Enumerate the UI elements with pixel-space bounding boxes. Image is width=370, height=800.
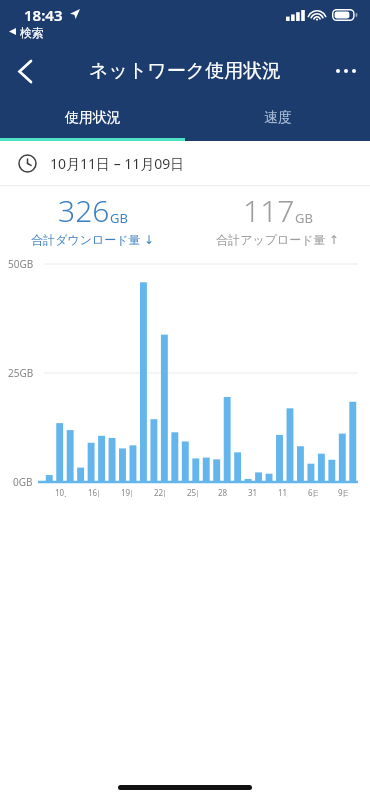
staticText: 9日 [338, 487, 348, 498]
staticText: 326 [58, 190, 110, 231]
staticText: 117 [243, 190, 295, 231]
staticText: 合計アップロード量 ↑ [216, 231, 339, 247]
staticText: 25日 [187, 487, 198, 498]
staticText: 16日 [88, 487, 99, 498]
staticText: GB [295, 209, 313, 227]
staticText: 合計ダウンロード量 ↓ [31, 231, 154, 247]
staticText: 11月3日 [278, 487, 288, 498]
button[interactable]: 速度 [185, 95, 370, 141]
staticText: 18:43 [24, 5, 63, 25]
button[interactable]: 使用状況 [0, 95, 185, 141]
button[interactable]: More options [322, 47, 370, 95]
button[interactable]: 10月11日 – 11月09日 [0, 141, 370, 185]
staticText: 50GB [8, 257, 34, 271]
staticText: 検索 [20, 25, 44, 40]
staticText: GB [110, 209, 128, 227]
staticText: 6日 [308, 487, 318, 498]
staticText: 31日 [248, 487, 258, 498]
button[interactable]: 117 [185, 186, 370, 250]
staticText: 0GB [13, 475, 33, 489]
staticText: 使用状況 [65, 109, 121, 127]
staticText: 10月11日 – 11月09日 [50, 154, 185, 173]
staticText: 25GB [8, 366, 34, 380]
staticText: 速度 [264, 109, 292, 127]
staticText: 19日 [121, 487, 132, 498]
staticText: ネットワーク使用状況 [89, 59, 282, 83]
staticText: 10月13日 [55, 487, 66, 498]
staticText: 28日 [218, 487, 228, 498]
staticText: 22日 [154, 487, 165, 498]
button[interactable]: Back [0, 47, 48, 95]
button[interactable]: 326 [0, 186, 185, 250]
